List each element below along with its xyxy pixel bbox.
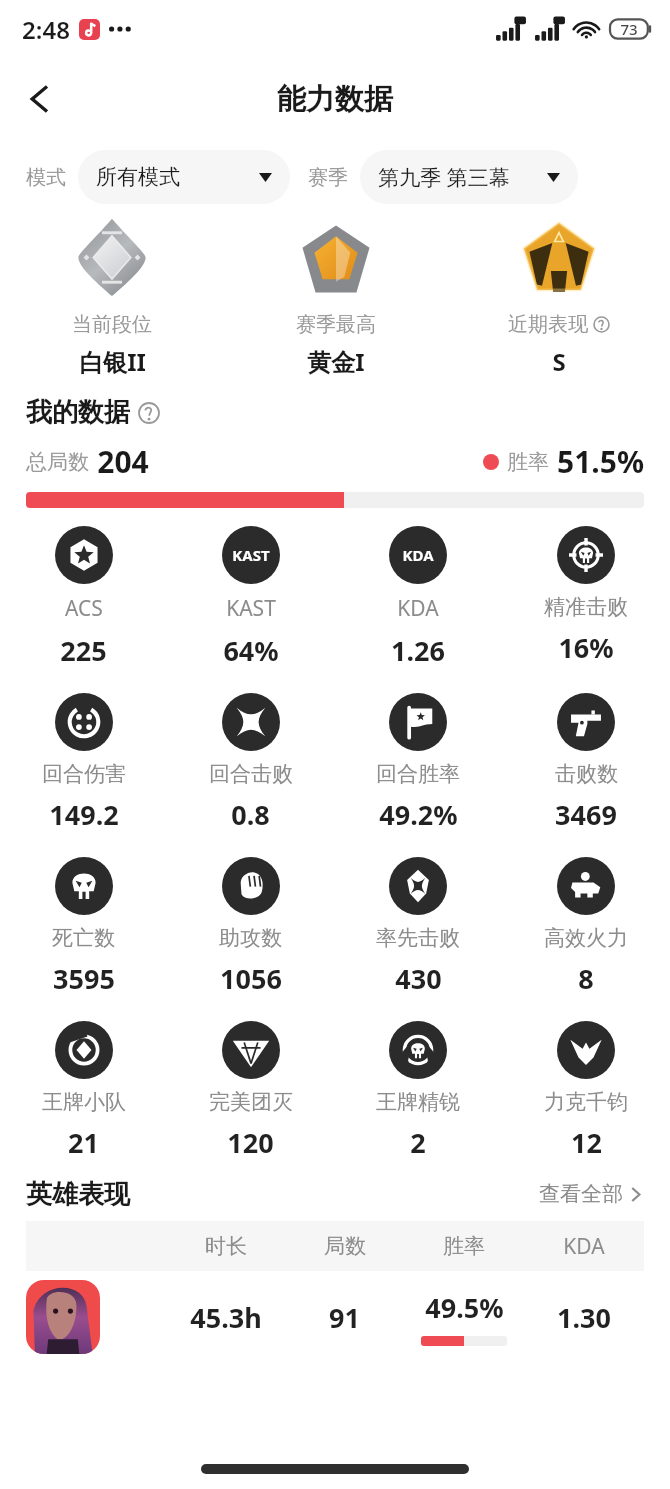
- button[interactable]: ACS: [0, 526, 167, 669]
- staticText: 胜率: [507, 449, 549, 475]
- staticText: 225: [60, 632, 107, 669]
- staticText: 击败数: [555, 761, 618, 787]
- button[interactable]: 精准击败: [502, 526, 670, 666]
- button[interactable]: 查看全部: [533, 1175, 648, 1213]
- staticText: 赛季最高: [296, 312, 376, 337]
- staticText: 1056: [220, 960, 282, 997]
- staticText: 当前段位: [72, 312, 152, 337]
- staticText: 45.3h: [190, 1299, 262, 1336]
- staticText: 率先击败: [376, 925, 460, 951]
- button[interactable]: 完美团灭: [167, 1021, 334, 1161]
- staticText: 精准击败: [544, 594, 628, 620]
- button[interactable]: 死亡数: [0, 857, 167, 997]
- staticText: KDA: [563, 1232, 605, 1261]
- staticText: 回合伤害: [42, 761, 126, 787]
- staticText: 王牌小队: [42, 1089, 126, 1115]
- staticText: 3595: [53, 960, 115, 997]
- staticText: 时长: [205, 1233, 247, 1259]
- button[interactable]: 当前段位: [0, 218, 224, 378]
- staticText: 8: [578, 960, 594, 997]
- button[interactable]: 助攻数: [167, 857, 334, 997]
- button[interactable]: 回合胜率: [334, 693, 502, 833]
- staticText: 73: [620, 19, 638, 39]
- button[interactable]: 第九季 第三幕: [360, 150, 578, 204]
- button[interactable]: 高效火力: [502, 857, 670, 997]
- button[interactable]: 力克千钧: [502, 1021, 670, 1161]
- staticText: 白银II: [79, 345, 146, 378]
- staticText: 黄金I: [307, 345, 365, 378]
- staticText: KDA: [402, 545, 434, 565]
- button[interactable]: 王牌小队: [0, 1021, 167, 1161]
- staticText: KAST: [226, 594, 276, 623]
- staticText: 能力数据: [277, 81, 393, 118]
- staticText: 2:48: [22, 13, 70, 46]
- staticText: 430: [395, 960, 442, 997]
- staticText: 91: [329, 1299, 360, 1336]
- staticText: 120: [227, 1124, 274, 1161]
- staticText: 2: [410, 1124, 426, 1161]
- staticText: 回合胜率: [376, 761, 460, 787]
- staticText: 12: [571, 1124, 602, 1161]
- staticText: 死亡数: [52, 925, 115, 951]
- staticText: 204: [97, 441, 149, 482]
- staticText: 赛季: [308, 165, 348, 190]
- button[interactable]: KAST: [167, 526, 334, 669]
- staticText: 查看全部: [539, 1181, 623, 1207]
- staticText: 1.26: [391, 632, 445, 669]
- staticText: 我的数据: [26, 396, 130, 429]
- staticText: 149.2: [49, 796, 119, 833]
- staticText: 完美团灭: [209, 1089, 293, 1115]
- staticText: 51.5%: [557, 441, 644, 482]
- button[interactable]: 赛季最高: [224, 218, 447, 378]
- staticText: 总局数: [26, 449, 89, 475]
- staticText: 第九季 第三幕: [378, 163, 510, 192]
- staticText: 1.30: [557, 1299, 611, 1336]
- button[interactable]: 率先击败: [334, 857, 502, 997]
- staticText: 王牌精锐: [376, 1089, 460, 1115]
- staticText: 助攻数: [219, 925, 282, 951]
- button[interactable]: 所有模式: [78, 150, 290, 204]
- staticText: 高效火力: [544, 925, 628, 951]
- staticText: 力克千钧: [544, 1089, 628, 1115]
- button[interactable]: 近期表现: [447, 218, 670, 378]
- staticText: 64%: [223, 632, 279, 669]
- staticText: KDA: [397, 594, 439, 623]
- staticText: 英雄表现: [26, 1178, 130, 1211]
- staticText: 21: [68, 1124, 99, 1161]
- staticText: 回合击败: [209, 761, 293, 787]
- staticText: 胜率: [443, 1233, 485, 1259]
- staticText: 近期表现: [508, 312, 588, 337]
- staticText: 所有模式: [96, 164, 180, 190]
- staticText: ACS: [65, 594, 103, 623]
- staticText: 局数: [324, 1233, 366, 1259]
- staticText: 16%: [558, 629, 614, 666]
- staticText: KAST: [232, 545, 270, 565]
- button[interactable]: KDA: [334, 526, 502, 669]
- button[interactable]: 回合伤害: [0, 693, 167, 833]
- button[interactable]: 45.3h: [26, 1271, 644, 1363]
- staticText: 模式: [26, 165, 66, 190]
- staticText: 49.2%: [379, 796, 458, 833]
- staticText: 0.8: [231, 796, 270, 833]
- staticText: S: [552, 345, 566, 378]
- staticText: 3469: [555, 796, 617, 833]
- button[interactable]: 击败数: [502, 693, 670, 833]
- staticText: 49.5%: [425, 1289, 504, 1326]
- button[interactable]: Back: [12, 71, 68, 127]
- button[interactable]: 王牌精锐: [334, 1021, 502, 1161]
- button[interactable]: 回合击败: [167, 693, 334, 833]
